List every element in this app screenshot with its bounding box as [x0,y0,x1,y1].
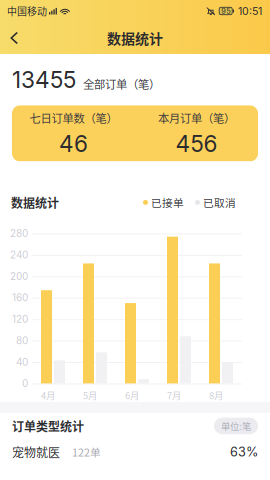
staticText: 中国移动 [7,4,47,18]
staticText: 数据统计 [107,28,163,48]
staticText: 4月 [41,388,55,402]
staticText: 单位:笔 [221,419,251,433]
staticText: 63% [230,444,258,460]
staticText: 宠物就医 [12,443,60,461]
staticText: 240 [10,249,28,261]
staticText: 本月订单（笔） [158,109,235,126]
button[interactable]: 宠物就医 [0,439,270,465]
staticText: 160 [12,292,28,304]
button[interactable]: 返回 [0,22,30,54]
staticText: 200 [10,270,28,282]
staticText: 456 [175,130,217,157]
staticText: 120 [12,313,28,325]
staticText: 280 [10,227,28,239]
staticText: 6月 [125,388,139,402]
staticText: 10:51 [238,4,262,17]
staticText: 95 [221,7,230,15]
staticText: 七日订单数（笔） [29,109,117,126]
staticText: 已取消 [203,195,236,210]
staticText: 40 [16,356,28,368]
staticText: 订单类型统计 [12,417,84,435]
staticText: 122单 [72,444,101,460]
staticText: 5月 [83,388,97,402]
staticText: 80 [16,334,28,347]
staticText: 0 [22,377,28,389]
staticText: 13455 [12,66,76,93]
staticText: 已接单 [151,195,184,210]
staticText: 数据统计 [11,194,59,211]
staticText: 46 [59,130,88,157]
staticText: 全部订单（笔） [83,75,160,92]
staticText: 7月 [167,388,181,402]
staticText: 8月 [209,388,223,402]
